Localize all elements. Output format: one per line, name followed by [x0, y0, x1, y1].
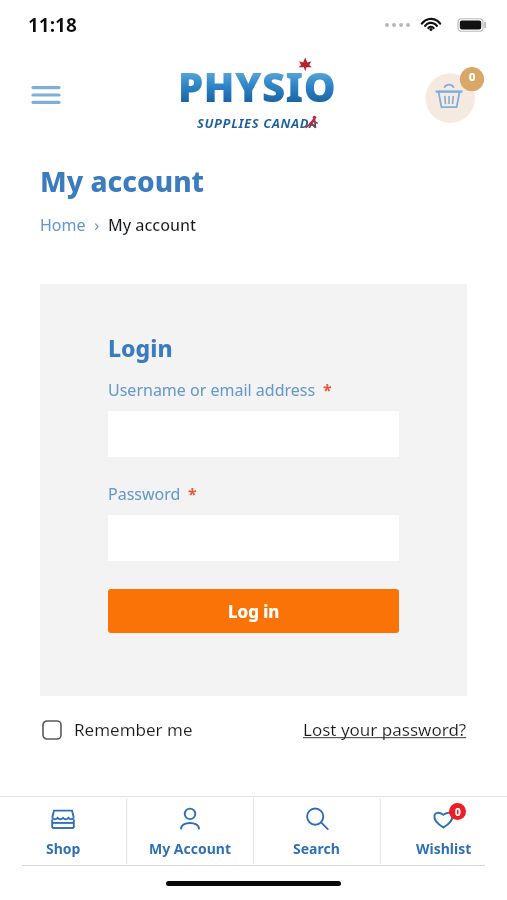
staticText: Remember me: [74, 718, 193, 741]
button[interactable]: Lost your password?: [303, 718, 467, 741]
staticText: Log in: [228, 600, 280, 623]
button[interactable]: Search: [253, 796, 380, 866]
staticText: ›: [86, 214, 108, 236]
staticText: My Account: [149, 839, 231, 858]
staticText: 0: [455, 805, 461, 819]
staticText: 0: [469, 69, 476, 84]
staticText: Password: [108, 483, 181, 505]
staticText: Login: [108, 332, 173, 363]
button[interactable]: Menu: [24, 73, 68, 117]
button[interactable]: Log in: [108, 589, 399, 633]
staticText: Search: [293, 839, 340, 858]
staticText: Shop: [46, 839, 81, 858]
button[interactable]: Remember me: [42, 718, 193, 741]
staticText: 11:18: [28, 12, 77, 38]
button[interactable]: Shop: [0, 796, 126, 866]
button[interactable]: PHYSIO: [178, 59, 337, 132]
staticText: SUPPLIES CANADA: [197, 114, 318, 132]
staticText: Username or email address: [108, 379, 316, 401]
staticText: *: [188, 483, 197, 505]
staticText: My account: [108, 214, 197, 236]
button[interactable]: 0: [380, 796, 507, 866]
staticText: *: [323, 379, 332, 401]
button[interactable]: Home: [40, 214, 86, 236]
staticText: My account: [40, 162, 205, 200]
staticText: Wishlist: [416, 839, 472, 858]
button[interactable]: My Account: [126, 796, 253, 866]
button[interactable]: Cart: [423, 64, 485, 126]
staticText: PHYSIO: [178, 59, 337, 113]
